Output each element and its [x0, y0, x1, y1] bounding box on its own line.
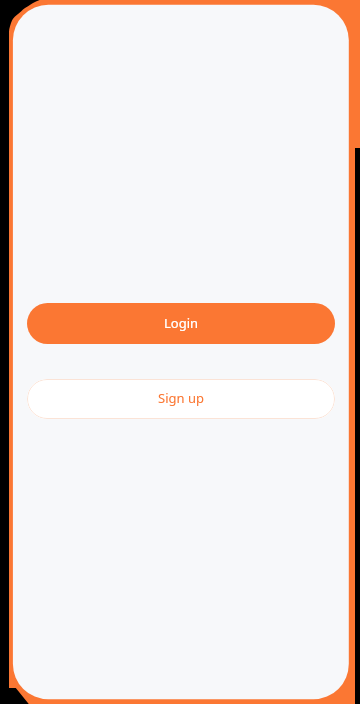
staticText: Sign up	[158, 389, 204, 407]
button[interactable]: Sign up	[27, 379, 335, 419]
button[interactable]: Login	[27, 303, 335, 344]
staticText: Login	[164, 314, 199, 332]
